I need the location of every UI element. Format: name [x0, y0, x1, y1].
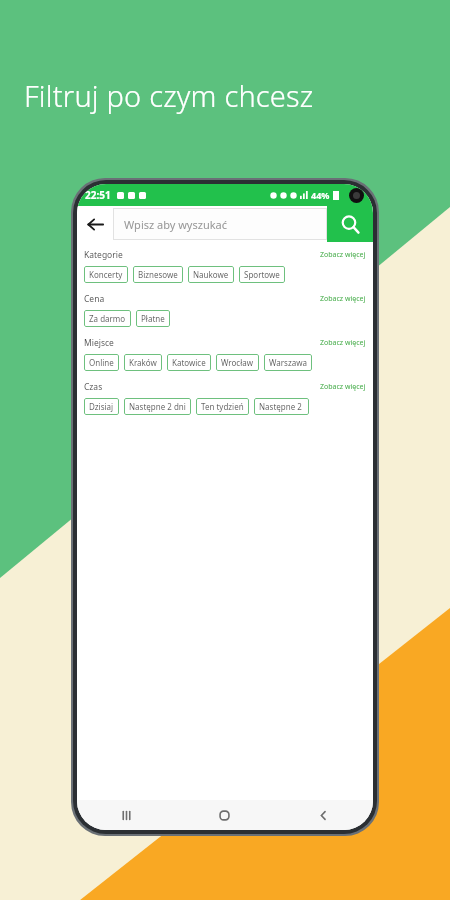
- button[interactable]: Ten tydzień: [196, 398, 249, 415]
- button[interactable]: Zobacz więcej: [320, 382, 366, 392]
- staticText: 22:51: [85, 188, 111, 202]
- staticText: Zobacz więcej: [320, 250, 366, 260]
- button[interactable]: Zobacz więcej: [320, 294, 366, 304]
- staticText: Zobacz więcej: [320, 382, 366, 392]
- staticText: Następne 2 dni: [129, 401, 186, 412]
- button[interactable]: Biznesowe: [133, 266, 183, 283]
- staticText: Biznesowe: [138, 269, 178, 280]
- button[interactable]: Płatne: [136, 310, 170, 327]
- button[interactable]: Dzisiaj: [84, 398, 119, 415]
- button[interactable]: Back: [77, 206, 113, 242]
- staticText: Wpisz aby wyszukać: [124, 217, 228, 232]
- staticText: Płatne: [141, 313, 165, 324]
- button[interactable]: Wrocław: [216, 354, 259, 371]
- staticText: Zobacz więcej: [320, 294, 366, 304]
- staticText: Ten tydzień: [201, 401, 244, 412]
- button[interactable]: Koncerty: [84, 266, 128, 283]
- staticText: Filtruj po czym chcesz: [24, 76, 314, 115]
- staticText: Sportowe: [244, 269, 280, 280]
- staticText: Następne 2: [259, 401, 304, 412]
- button[interactable]: Online: [84, 354, 119, 371]
- staticText: Wrocław: [221, 357, 254, 368]
- button[interactable]: Następne 2: [254, 398, 309, 415]
- button[interactable]: Home: [175, 800, 274, 830]
- button[interactable]: Back: [274, 800, 373, 830]
- button[interactable]: Wpisz aby wyszukać: [113, 208, 327, 240]
- staticText: Czas: [84, 381, 103, 393]
- staticText: Cena: [84, 293, 105, 305]
- staticText: Zobacz więcej: [320, 338, 366, 348]
- button[interactable]: Katowice: [167, 354, 211, 371]
- staticText: Kraków: [129, 357, 157, 368]
- button[interactable]: Sportowe: [239, 266, 285, 283]
- staticText: 44%: [311, 189, 330, 201]
- staticText: Naukowe: [193, 269, 229, 280]
- button[interactable]: Zobacz więcej: [320, 338, 366, 348]
- staticText: Kategorie: [84, 249, 123, 261]
- staticText: Online: [89, 357, 114, 368]
- staticText: Warszawa: [269, 357, 307, 368]
- button[interactable]: Naukowe: [188, 266, 234, 283]
- staticText: Katowice: [172, 357, 206, 368]
- button[interactable]: Recents: [77, 800, 175, 830]
- staticText: Za darmo: [89, 313, 126, 324]
- button[interactable]: Search: [327, 206, 373, 242]
- staticText: Koncerty: [89, 269, 123, 280]
- staticText: Miejsce: [84, 337, 114, 349]
- button[interactable]: Zobacz więcej: [320, 250, 366, 260]
- button[interactable]: Za darmo: [84, 310, 131, 327]
- button[interactable]: Następne 2 dni: [124, 398, 191, 415]
- button[interactable]: Kraków: [124, 354, 162, 371]
- staticText: Dzisiaj: [89, 401, 114, 412]
- button[interactable]: Warszawa: [264, 354, 312, 371]
